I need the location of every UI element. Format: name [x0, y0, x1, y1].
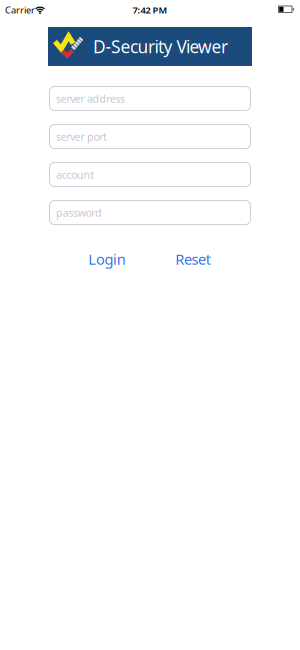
staticText: server address — [56, 91, 125, 106]
button[interactable]: Reset — [157, 248, 229, 270]
button[interactable]: account — [49, 162, 251, 187]
staticText: Carrier — [5, 4, 35, 16]
button[interactable]: server port — [49, 124, 251, 149]
staticText: password — [56, 205, 102, 220]
button[interactable]: server address — [49, 86, 251, 111]
staticText: account — [56, 167, 94, 182]
button[interactable]: Login — [71, 248, 143, 270]
staticText: 7:42 PM — [132, 4, 167, 16]
staticText: Login — [88, 249, 126, 269]
staticText: Reset — [175, 249, 211, 269]
staticText: D-Security Viewer — [93, 35, 228, 58]
staticText: server port — [56, 129, 107, 144]
button[interactable]: password — [49, 200, 251, 225]
